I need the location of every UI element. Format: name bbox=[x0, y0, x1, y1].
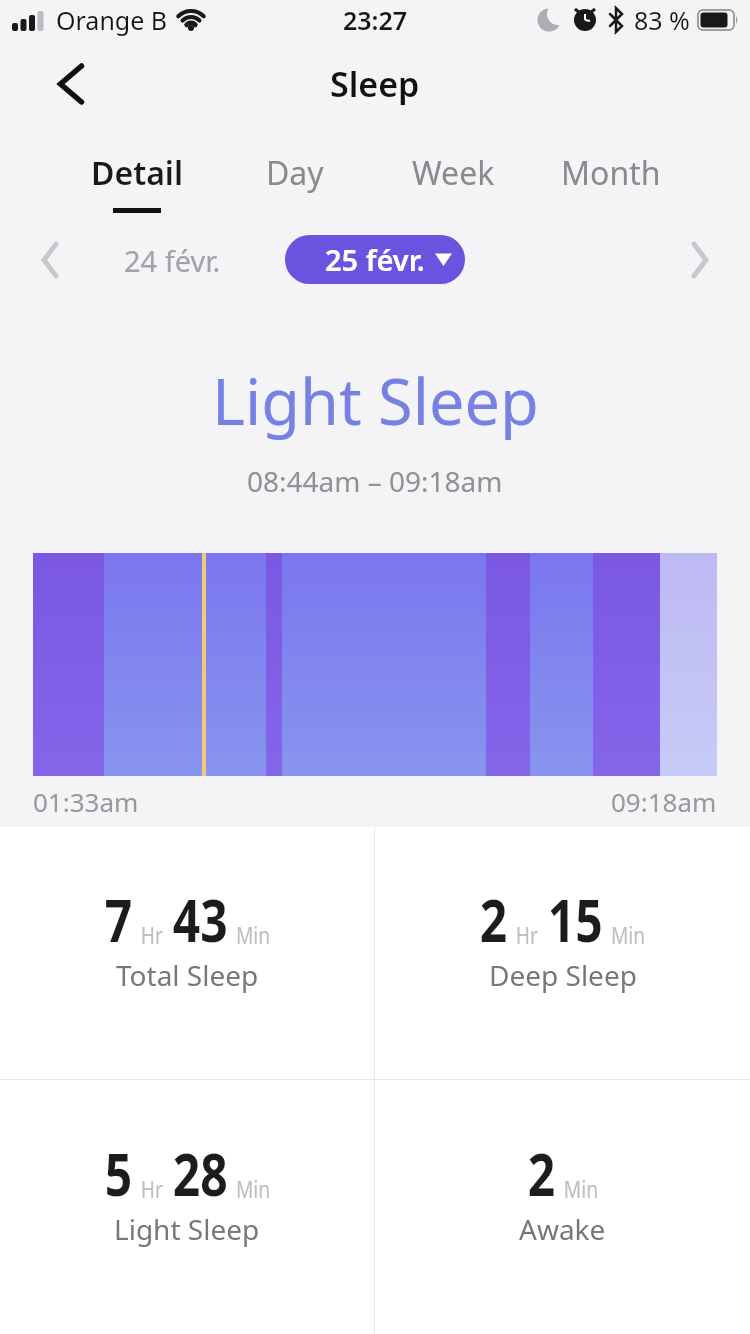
button[interactable]: 2 bbox=[375, 1080, 750, 1334]
staticText: Light Sleep bbox=[114, 1210, 260, 1248]
staticText: Sleep bbox=[330, 61, 420, 107]
staticText: 2 bbox=[528, 1132, 556, 1214]
staticText: Detail bbox=[91, 151, 183, 195]
button[interactable] bbox=[56, 64, 86, 104]
button[interactable] bbox=[38, 240, 62, 280]
staticText: Orange B bbox=[56, 3, 168, 37]
staticText: 83 % bbox=[634, 3, 690, 37]
staticText: 08:44am – 09:18am bbox=[247, 462, 503, 500]
staticText: 15 bbox=[548, 878, 603, 960]
staticText: Light Sleep bbox=[212, 358, 539, 444]
staticText: Hr bbox=[141, 918, 163, 951]
staticText: Deep Sleep bbox=[489, 956, 637, 994]
button[interactable]: Day bbox=[216, 144, 374, 213]
staticText: 43 bbox=[173, 878, 228, 960]
staticText: 2 bbox=[480, 878, 508, 960]
staticText: 7 bbox=[105, 878, 133, 960]
staticText: Day bbox=[266, 151, 324, 195]
button[interactable] bbox=[688, 240, 712, 280]
staticText: 28 bbox=[173, 1132, 228, 1214]
staticText: Week bbox=[412, 151, 495, 195]
button[interactable]: Detail bbox=[58, 144, 216, 213]
button[interactable]: 25 févr. bbox=[285, 235, 465, 284]
staticText: 24 févr. bbox=[124, 241, 221, 280]
staticText: 09:18am bbox=[611, 784, 717, 819]
staticText: 23:27 bbox=[343, 3, 408, 37]
staticText: Min bbox=[564, 1172, 598, 1205]
staticText: Hr bbox=[141, 1172, 163, 1205]
staticText: Min bbox=[611, 918, 645, 951]
staticText: Awake bbox=[519, 1210, 606, 1248]
staticText: Total Sleep bbox=[116, 956, 259, 994]
staticText: Month bbox=[561, 151, 661, 195]
staticText: Hr bbox=[516, 918, 538, 951]
staticText: 5 bbox=[105, 1132, 133, 1214]
button[interactable]: Month bbox=[532, 144, 690, 213]
staticText: 25 févr. bbox=[325, 240, 425, 279]
button[interactable]: Week bbox=[374, 144, 532, 213]
staticText: 01:33am bbox=[33, 784, 139, 819]
button[interactable]: 5 bbox=[0, 1080, 374, 1334]
button[interactable]: 7 bbox=[0, 827, 374, 1079]
button[interactable]: 24 févr. bbox=[100, 240, 245, 280]
staticText: Min bbox=[236, 918, 270, 951]
button[interactable]: 2 bbox=[375, 827, 750, 1079]
staticText: Min bbox=[236, 1172, 270, 1205]
